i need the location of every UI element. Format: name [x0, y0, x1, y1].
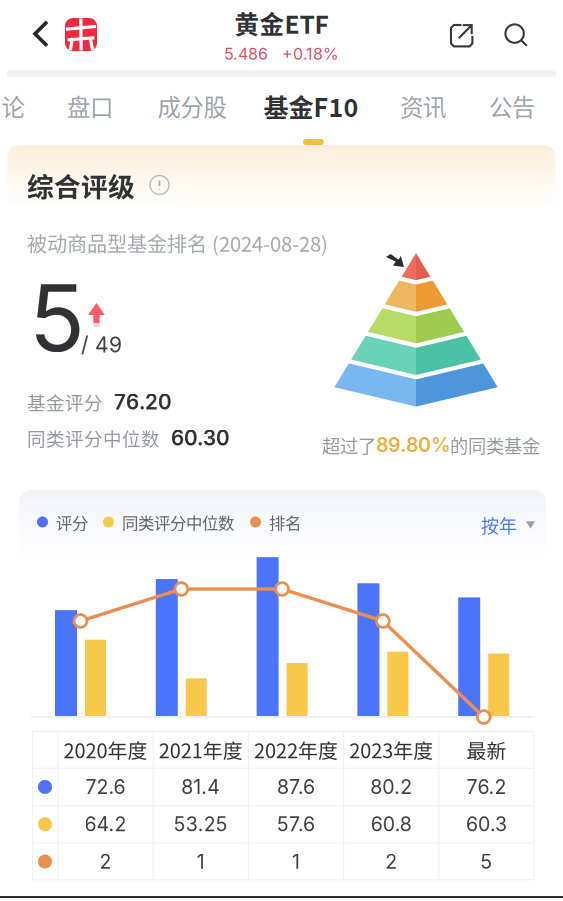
staticText: 60.8	[371, 812, 412, 836]
button[interactable]: Search	[493, 12, 540, 59]
button[interactable]: 资讯	[383, 84, 463, 128]
staticText: 盘口	[67, 89, 113, 123]
staticText: 2023年度	[349, 735, 433, 764]
staticText: 2021年度	[159, 735, 243, 764]
staticText: 57.6	[277, 812, 315, 836]
staticText: 76.20	[114, 389, 172, 414]
button[interactable]: 盘口	[50, 84, 130, 128]
staticText: 60.3	[466, 812, 507, 836]
staticText: 的同类基金	[450, 432, 540, 458]
staticText: 最新	[466, 735, 506, 764]
staticText: 2022年度	[254, 735, 338, 764]
button[interactable]: Share	[438, 12, 485, 59]
button[interactable]: Fund logo	[65, 18, 97, 51]
staticText: 2020年度	[64, 735, 148, 764]
staticText: 评分	[56, 510, 88, 534]
staticText: 基金评分	[27, 389, 103, 415]
staticText: 排名	[269, 510, 301, 534]
button[interactable]: Back	[23, 12, 59, 56]
staticText: 81.4	[181, 775, 220, 799]
staticText: 5	[29, 262, 85, 373]
staticText: 同类评分中位数	[122, 510, 234, 534]
staticText: 80.2	[370, 775, 412, 799]
staticText: 按年	[481, 512, 517, 538]
staticText: 被动商品型基金排名 (2024-08-28)	[27, 228, 328, 258]
staticText: / 49	[81, 332, 122, 357]
staticText: 1	[197, 850, 205, 873]
staticText: +0.18%	[282, 44, 339, 64]
staticText: 基金F10	[263, 88, 358, 124]
staticText: 公告	[489, 89, 535, 123]
staticText: 同类评分中位数	[27, 425, 160, 451]
staticText: 综合评级	[27, 166, 135, 204]
staticText: 成分股	[157, 89, 226, 123]
staticText: 1	[292, 850, 300, 873]
button[interactable]: 按年	[481, 511, 561, 539]
staticText: 60.30	[171, 425, 230, 450]
staticText: 5.486	[224, 44, 268, 64]
button[interactable]: 论	[0, 84, 39, 128]
staticText: 2	[385, 850, 397, 873]
staticText: 论	[1, 89, 24, 123]
staticText: 89.80%	[376, 433, 450, 457]
button[interactable]: 公告	[472, 84, 552, 128]
staticText: 72.6	[86, 775, 126, 799]
staticText: 53.25	[174, 812, 228, 836]
staticText: 超过了	[322, 432, 376, 458]
button[interactable]: 成分股	[142, 84, 242, 128]
staticText: 76.2	[466, 775, 506, 799]
staticText: 5	[480, 850, 492, 873]
button[interactable]: 基金F10	[251, 84, 371, 128]
staticText: 资讯	[400, 89, 446, 123]
staticText: 2	[100, 850, 112, 873]
staticText: 黄金ETF	[234, 5, 328, 41]
staticText: 64.2	[85, 812, 127, 836]
staticText: 87.6	[277, 775, 315, 799]
